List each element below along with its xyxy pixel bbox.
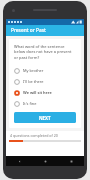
staticText: I'll be there xyxy=(23,79,44,84)
staticText: 4 questions completed of 20 xyxy=(10,133,58,138)
staticText: It's fine xyxy=(23,101,37,106)
button[interactable]: I'll be there xyxy=(14,76,76,87)
button[interactable]: It's fine xyxy=(14,98,76,109)
button[interactable]: Back xyxy=(6,156,32,166)
staticText: Present or Past xyxy=(11,27,46,34)
staticText: We will sit here xyxy=(23,90,52,95)
button[interactable]: Recents xyxy=(58,156,84,166)
button[interactable]: Home xyxy=(32,156,58,166)
button[interactable]: We will sit here xyxy=(14,87,76,98)
staticText: My brother xyxy=(23,68,44,73)
staticText: What word of the sentence below does not… xyxy=(14,44,76,61)
button[interactable]: My brother xyxy=(14,65,76,76)
button[interactable]: NEXT xyxy=(14,112,76,123)
button[interactable]: Present or Past xyxy=(6,25,84,36)
staticText: NEXT xyxy=(39,115,51,121)
